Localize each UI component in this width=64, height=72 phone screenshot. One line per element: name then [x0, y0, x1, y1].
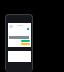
button[interactable] — [21, 43, 30, 45]
button[interactable] — [9, 25, 13, 28]
button[interactable] — [21, 40, 30, 42]
